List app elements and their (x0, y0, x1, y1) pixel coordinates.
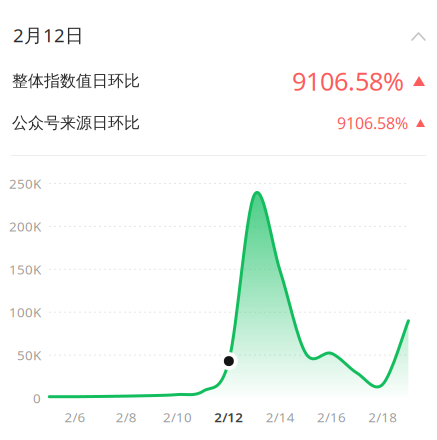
button[interactable]: Collapse (401, 22, 436, 51)
staticText: 2/16 (317, 408, 346, 426)
staticText: 250K (9, 175, 41, 192)
staticText: 整体指数值日环比 (12, 71, 140, 91)
staticText: 150K (9, 260, 41, 278)
staticText: 0 (33, 389, 41, 407)
staticText: 2/8 (116, 408, 137, 426)
staticText: 公众号来源日环比 (12, 113, 140, 133)
staticText: 200K (9, 217, 41, 235)
staticText: 2/12 (214, 408, 243, 426)
staticText: 2/18 (368, 408, 397, 426)
staticText: 9106.58% (337, 112, 408, 134)
staticText: 2/10 (163, 408, 192, 426)
staticText: 2月12日 (13, 23, 84, 47)
staticText: 9106.58% (292, 64, 404, 98)
staticText: 2/14 (266, 408, 295, 426)
staticText: 100K (9, 303, 41, 321)
staticText: 2/6 (64, 408, 85, 426)
staticText: 50K (17, 346, 41, 364)
